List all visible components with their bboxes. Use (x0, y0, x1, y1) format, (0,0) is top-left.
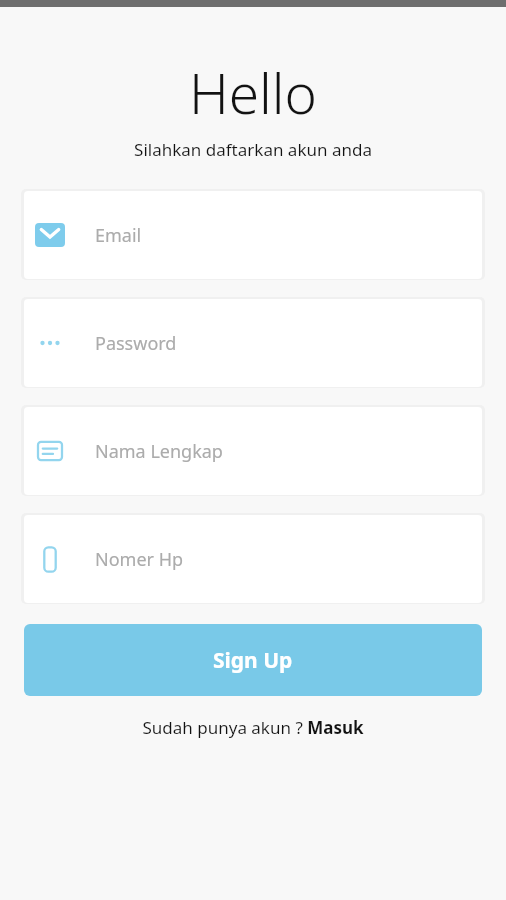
other: Phone number (35, 546, 65, 573)
staticText: Password (95, 331, 177, 356)
button[interactable]: Sign Up (24, 624, 482, 696)
staticText: Sign Up (213, 646, 293, 675)
button[interactable]: Full name (24, 407, 482, 495)
staticText: Silahkan daftarkan akun anda (0, 138, 506, 161)
staticText: Email (95, 223, 142, 248)
button[interactable]: Sudah punya akun ? Masuk (0, 716, 506, 739)
button[interactable]: Email (24, 191, 482, 279)
staticText: Hello (0, 55, 506, 130)
button[interactable]: Password (24, 299, 482, 387)
other: Full name (35, 439, 65, 463)
staticText: Nomer Hp (95, 547, 184, 572)
other: Password (35, 331, 65, 355)
other: Email (35, 223, 65, 247)
staticText: Sudah punya akun ? Masuk (0, 716, 506, 739)
button[interactable]: Phone number (24, 515, 482, 603)
staticText: Nama Lengkap (95, 439, 223, 464)
